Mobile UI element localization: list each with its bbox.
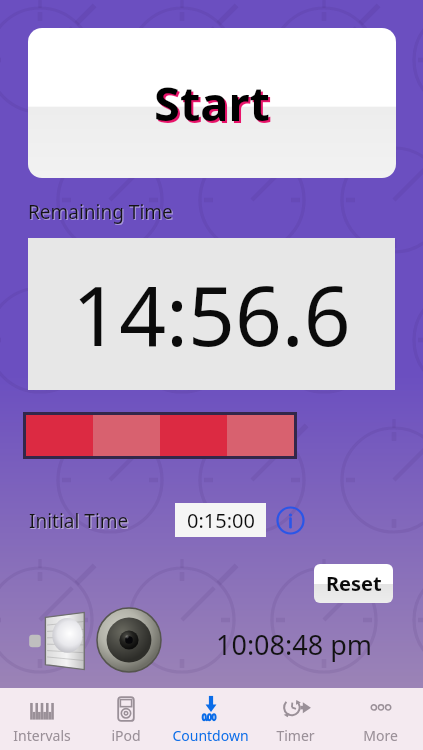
button[interactable]: Info bbox=[276, 506, 305, 535]
staticText: 10:08:48 pm bbox=[216, 626, 373, 663]
staticText: Start bbox=[154, 71, 270, 135]
staticText: Initial Time bbox=[30, 509, 130, 535]
staticText: iPod bbox=[111, 726, 141, 745]
button[interactable]: Sound bbox=[97, 608, 161, 672]
button[interactable]: Reset bbox=[314, 564, 393, 603]
button[interactable]: 0:15:00 bbox=[175, 503, 266, 537]
staticText: Intervals bbox=[13, 726, 71, 745]
staticText: Countdown bbox=[172, 726, 249, 745]
staticText: Timer bbox=[276, 726, 315, 745]
button[interactable]: Countdown bbox=[168, 688, 253, 750]
staticText: Remaining Time bbox=[29, 200, 174, 226]
staticText: 14:56.6 bbox=[72, 258, 351, 370]
staticText: More bbox=[363, 726, 398, 745]
button[interactable]: Flash bbox=[28, 610, 86, 672]
staticText: 0:15:00 bbox=[187, 507, 255, 534]
button[interactable]: Intervals bbox=[0, 688, 84, 750]
button[interactable]: Timer bbox=[253, 688, 338, 750]
staticText: Initial Time bbox=[29, 508, 129, 534]
staticText: Start bbox=[156, 73, 272, 137]
staticText: Remaining Time bbox=[28, 199, 173, 225]
button[interactable]: More bbox=[338, 688, 423, 750]
staticText: Reset bbox=[326, 570, 382, 597]
button[interactable]: iPod bbox=[84, 688, 168, 750]
button[interactable]: Start bbox=[28, 28, 396, 178]
